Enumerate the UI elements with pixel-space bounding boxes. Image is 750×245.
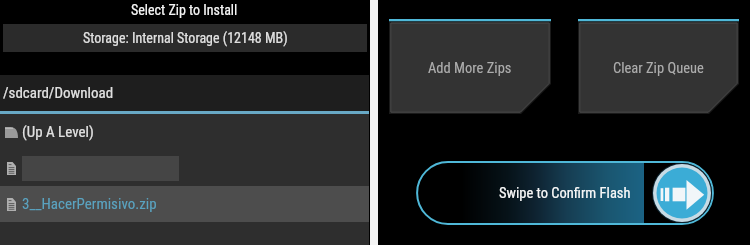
staticText: Storage: Internal Storage (12148 MB) <box>83 30 288 46</box>
staticText: Select Zip to Install <box>131 2 238 18</box>
staticText: Swipe to Confirm Flash <box>499 185 631 202</box>
button[interactable]: Add More Zips <box>389 19 551 114</box>
button[interactable]: (Up A Level) <box>0 114 369 150</box>
staticText: 3__HacerPermisivo.zip <box>22 195 157 213</box>
staticText: Clear Zip Queue <box>613 60 704 77</box>
button[interactable]: Storage: Internal Storage (12148 MB) <box>3 24 367 52</box>
other: Swipe to Confirm Flash <box>652 163 712 223</box>
staticText: /sdcard/Download <box>3 84 114 102</box>
staticText: Add More Zips <box>428 60 512 77</box>
button[interactable]: Swipe to Confirm Flash <box>416 161 714 225</box>
button[interactable]: 3__HacerPermisivo.zip <box>0 186 369 222</box>
button[interactable]: Clear Zip Queue <box>578 19 739 114</box>
staticText: (Up A Level) <box>22 123 94 141</box>
button[interactable] <box>0 150 369 186</box>
